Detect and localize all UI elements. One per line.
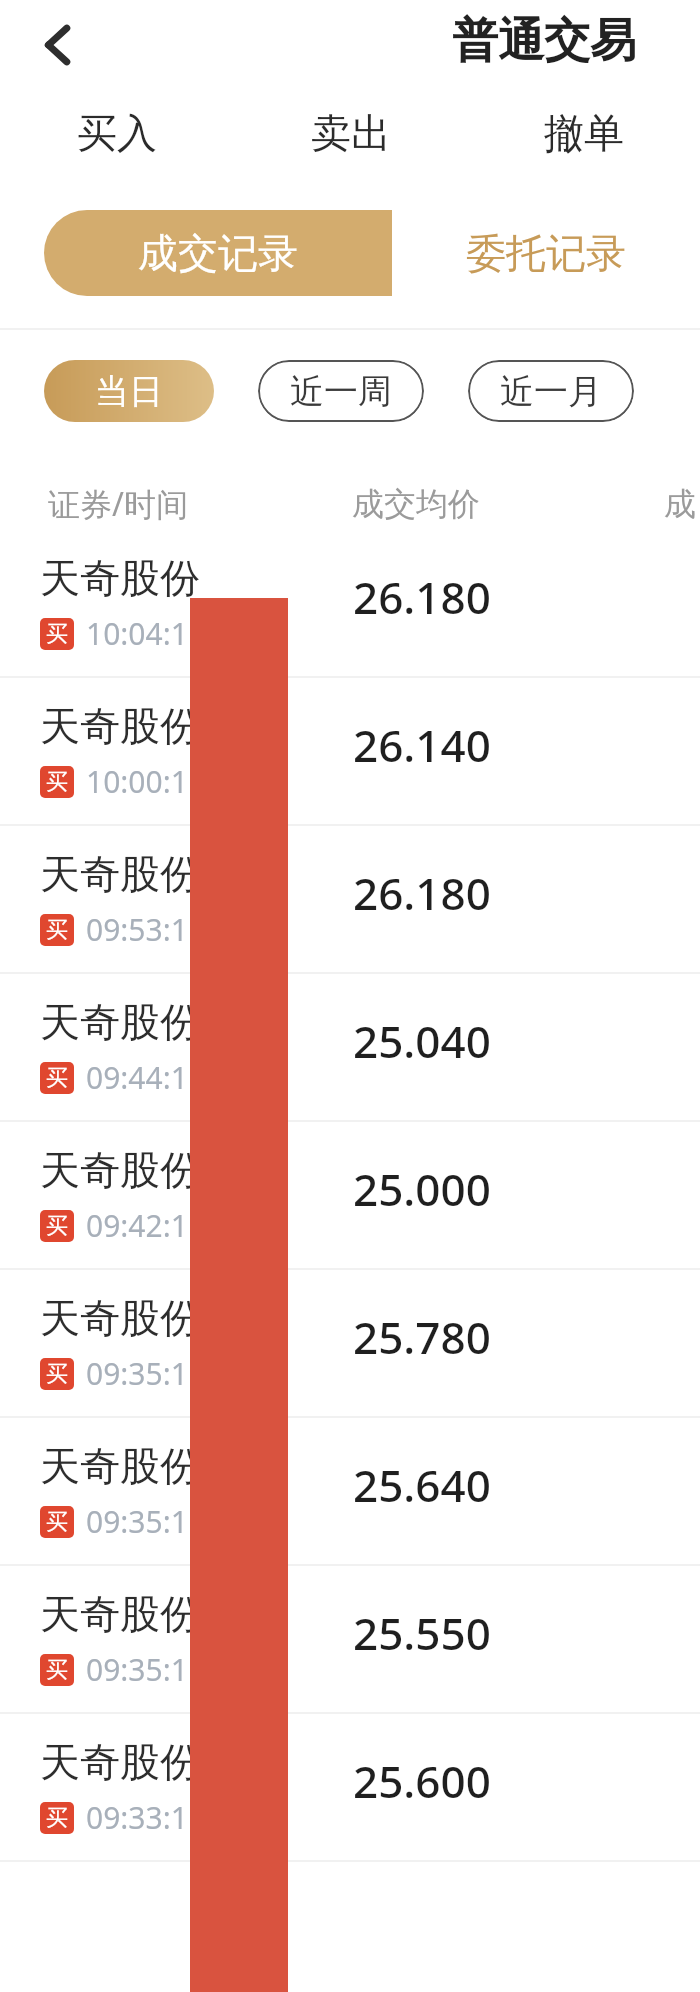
staticText: 25.640 (353, 1455, 491, 1515)
staticText: 撤单 (544, 108, 624, 158)
staticText: 买 (46, 768, 68, 796)
staticText: 25.780 (353, 1307, 491, 1367)
staticText: 当日 (95, 370, 163, 413)
button[interactable]: 卖出 (234, 90, 467, 176)
staticText: 天奇股份 (40, 997, 200, 1047)
staticText: 近一月 (500, 370, 602, 413)
staticText: 买 (46, 620, 68, 648)
staticText: 成交记录 (138, 228, 298, 278)
staticText: 委托记录 (466, 228, 626, 278)
staticText: 天奇股份 (40, 701, 200, 751)
staticText: 买 (46, 1656, 68, 1684)
staticText: 买 (46, 1360, 68, 1388)
staticText: 成交均价 (352, 484, 480, 524)
staticText: 09:35:11 (86, 1501, 206, 1542)
button[interactable]: Back (22, 9, 94, 81)
staticText: 买 (46, 1064, 68, 1092)
staticText: 天奇股份 (40, 1441, 200, 1491)
staticText: 25.600 (353, 1751, 491, 1811)
staticText: 天奇股份 (40, 849, 200, 899)
button[interactable]: 撤单 (467, 90, 700, 176)
staticText: 10:04:11 (86, 613, 206, 654)
button[interactable]: 天奇股份 (0, 1714, 700, 1862)
staticText: 买 (46, 916, 68, 944)
staticText: 卖出 (311, 108, 391, 158)
staticText: 25.040 (353, 1011, 491, 1071)
button[interactable]: 近一周 (258, 360, 424, 422)
staticText: 成 (664, 484, 696, 524)
button[interactable]: 天奇股份 (0, 826, 700, 974)
button[interactable]: 天奇股份 (0, 1122, 700, 1270)
staticText: 09:53:11 (86, 909, 206, 950)
staticText: 买 (46, 1508, 68, 1536)
staticText: 天奇股份 (40, 1293, 200, 1343)
button[interactable]: 天奇股份 (0, 1566, 700, 1714)
staticText: 25.000 (353, 1159, 491, 1219)
button[interactable]: 委托记录 (392, 210, 700, 296)
button[interactable]: 天奇股份 (0, 678, 700, 826)
staticText: 09:44:11 (86, 1057, 206, 1098)
staticText: 普通交易 (452, 12, 636, 70)
staticText: 天奇股份 (40, 1589, 200, 1639)
button[interactable]: 买入 (0, 90, 234, 176)
staticText: 25.550 (353, 1603, 491, 1663)
staticText: 09:35:11 (86, 1353, 206, 1394)
button[interactable]: 成交记录 (44, 210, 392, 296)
staticText: 09:33:11 (86, 1797, 206, 1838)
staticText: 26.180 (353, 863, 491, 923)
staticText: 近一周 (290, 370, 392, 413)
button[interactable]: 近一月 (468, 360, 634, 422)
button[interactable]: 天奇股份 (0, 1270, 700, 1418)
button[interactable]: 天奇股份 (0, 974, 700, 1122)
staticText: 26.180 (353, 567, 491, 627)
staticText: 天奇股份 (40, 553, 200, 603)
button[interactable]: 天奇股份 (0, 1418, 700, 1566)
staticText: 天奇股份 (40, 1145, 200, 1195)
staticText: 买 (46, 1212, 68, 1240)
staticText: 天奇股份 (40, 1737, 200, 1787)
staticText: 买 (46, 1804, 68, 1832)
staticText: 10:00:11 (86, 761, 206, 802)
button[interactable]: 当日 (44, 360, 214, 422)
staticText: 26.140 (353, 715, 491, 775)
staticText: 09:35:11 (86, 1649, 206, 1690)
staticText: 09:42:11 (86, 1205, 206, 1246)
staticText: 买入 (77, 108, 157, 158)
staticText: 证券/时间 (48, 482, 188, 526)
button[interactable]: 天奇股份 (0, 530, 700, 678)
